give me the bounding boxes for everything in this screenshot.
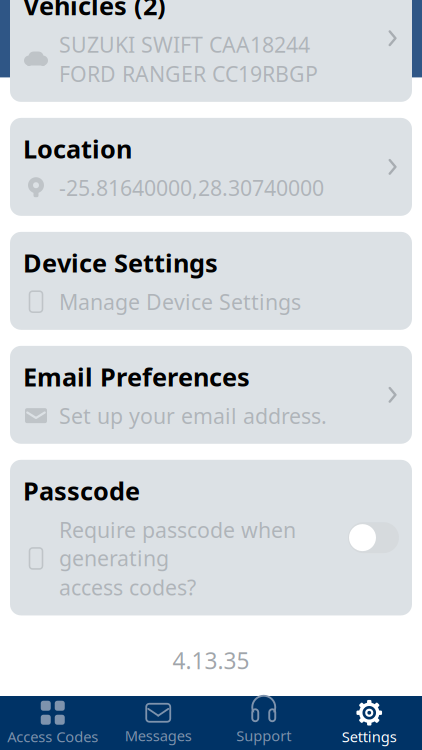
staticText: Access Codes <box>7 727 98 746</box>
button[interactable]: Messages <box>105 697 211 749</box>
staticText: Email Preferences <box>23 360 250 393</box>
staticText: Settings <box>160 30 262 65</box>
staticText: Carrier <box>12 0 68 22</box>
button[interactable]: Access Codes <box>0 696 105 750</box>
staticText: Set up your email address. <box>59 401 327 430</box>
button[interactable]: Settings <box>316 696 422 750</box>
button[interactable]: Support <box>211 697 316 749</box>
staticText: Messages <box>125 726 192 745</box>
staticText: EAGLE CANYON <box>175 719 246 750</box>
staticText: FORD RANGER CC19RBGP <box>59 60 318 88</box>
button[interactable]: Location <box>10 118 412 216</box>
staticText: Location <box>23 132 132 165</box>
staticText: Passcode <box>23 474 140 507</box>
staticText: access codes? <box>59 573 196 601</box>
staticText: Require passcode when generating <box>59 515 296 572</box>
button[interactable]: Passcode <box>10 460 412 615</box>
staticText: -25.81640000,28.30740000 <box>59 173 324 202</box>
staticText: 4.13.35 <box>172 645 249 675</box>
staticText: Manage Device Settings <box>59 287 301 316</box>
staticText: SUZUKI SWIFT CAA18244 <box>59 30 310 58</box>
button[interactable]: Device Settings <box>10 232 412 330</box>
staticText: Vehicles (2) <box>23 0 166 22</box>
staticText: Settings <box>342 727 397 746</box>
button[interactable]: Email Preferences <box>10 346 412 444</box>
button[interactable]: Vehicles (2) <box>10 0 412 102</box>
staticText: Support <box>236 726 291 745</box>
button[interactable]: Require passcode when generating access … <box>348 522 399 553</box>
staticText: Device Settings <box>23 246 218 279</box>
